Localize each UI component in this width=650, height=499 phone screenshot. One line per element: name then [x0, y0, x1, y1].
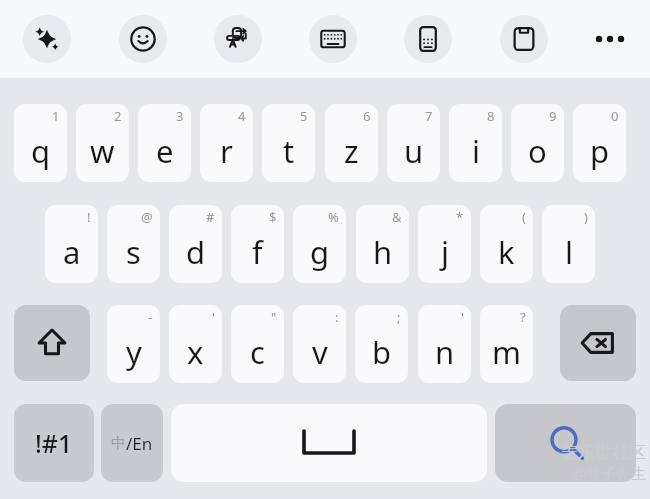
staticText: a	[63, 231, 81, 273]
staticText: i	[472, 130, 480, 172]
staticText: !#1	[35, 426, 73, 460]
staticText: g	[310, 231, 330, 273]
staticText: 中	[111, 434, 126, 453]
staticText: 3	[176, 107, 184, 125]
staticText: n	[435, 331, 455, 373]
staticText: d	[186, 231, 206, 273]
button[interactable]: Translate	[214, 15, 262, 63]
staticText: c	[250, 331, 265, 373]
button[interactable]: !	[45, 205, 98, 283]
button[interactable]: Emoji	[119, 15, 167, 63]
button[interactable]: 1	[14, 104, 67, 182]
staticText: )	[584, 208, 588, 226]
button[interactable]: One hand mode	[404, 15, 452, 63]
staticText: 9	[549, 107, 557, 125]
button[interactable]: 3	[138, 104, 191, 182]
button[interactable]: 中	[101, 404, 163, 482]
button[interactable]: %	[293, 205, 346, 283]
button[interactable]: 0	[573, 104, 626, 182]
staticText: z	[344, 130, 359, 172]
staticText: *	[456, 208, 464, 226]
staticText: @号子先生	[572, 463, 646, 483]
staticText: 7	[425, 107, 433, 125]
button[interactable]: 4	[200, 104, 253, 182]
staticText: $	[269, 208, 277, 226]
staticText: &	[392, 208, 402, 226]
staticText: k	[498, 231, 515, 273]
staticText: b	[372, 331, 392, 373]
button[interactable]: @	[107, 205, 160, 283]
staticText: j	[441, 231, 449, 273]
button[interactable]: More options	[588, 27, 632, 51]
button[interactable]: 6	[325, 104, 378, 182]
staticText: t	[283, 130, 295, 172]
button[interactable]: Search	[495, 404, 636, 482]
button[interactable]: "	[231, 305, 284, 383]
button[interactable]: (	[480, 205, 533, 283]
button[interactable]: Shift	[14, 305, 90, 381]
button[interactable]: '	[169, 305, 222, 383]
button[interactable]: 9	[511, 104, 564, 182]
staticText: %	[328, 208, 339, 226]
staticText: x	[187, 331, 204, 373]
button[interactable]: 7	[387, 104, 440, 182]
button[interactable]: !#1	[14, 404, 94, 482]
staticText: "	[271, 308, 277, 326]
button[interactable]: 2	[76, 104, 129, 182]
staticText: o	[528, 130, 547, 172]
staticText: l	[565, 231, 573, 273]
button[interactable]: 8	[449, 104, 502, 182]
staticText: m	[492, 331, 521, 373]
button[interactable]: Space	[171, 404, 487, 482]
staticText: h	[373, 231, 393, 273]
staticText: f	[252, 231, 263, 273]
staticText: s	[126, 231, 141, 273]
button[interactable]: ;	[355, 305, 408, 383]
staticText: ;	[397, 308, 401, 326]
staticText: '	[461, 308, 464, 326]
staticText: r	[220, 130, 233, 172]
button[interactable]: &	[356, 205, 409, 283]
staticText: q	[31, 130, 51, 172]
button[interactable]: #	[169, 205, 222, 283]
button[interactable]: ?	[480, 305, 533, 383]
staticText: /En	[126, 432, 153, 455]
button[interactable]: Sparkle	[23, 15, 71, 63]
staticText: 5	[300, 107, 308, 125]
staticText: u	[404, 130, 424, 172]
staticText: -	[148, 308, 153, 326]
staticText: 2	[114, 107, 122, 125]
button[interactable]: -	[107, 305, 160, 383]
staticText: 0	[611, 107, 619, 125]
staticText: p	[590, 130, 610, 172]
staticText: :	[335, 308, 339, 326]
staticText: ?	[520, 308, 526, 326]
button[interactable]: $	[231, 205, 284, 283]
staticText: y	[126, 331, 142, 373]
staticText: 8	[487, 107, 495, 125]
staticText: 4	[238, 107, 246, 125]
button[interactable]: '	[418, 305, 471, 383]
staticText: e	[156, 130, 174, 172]
button[interactable]: Backspace	[560, 305, 636, 381]
staticText: w	[90, 130, 115, 172]
staticText: 1	[52, 107, 60, 125]
button[interactable]: 5	[262, 104, 315, 182]
staticText: 6	[363, 107, 371, 125]
staticText: '	[212, 308, 215, 326]
button[interactable]: Clipboard	[500, 15, 548, 63]
button[interactable]: )	[542, 205, 595, 283]
button[interactable]: :	[293, 305, 346, 383]
staticText: v	[312, 331, 328, 373]
button[interactable]: Keyboard layout	[309, 15, 357, 63]
staticText: #	[206, 208, 215, 226]
staticText: 盖乐世社区	[561, 442, 646, 463]
staticText: (	[522, 208, 526, 226]
staticText: @	[141, 208, 153, 226]
staticText: !	[87, 208, 91, 226]
button[interactable]: *	[418, 205, 471, 283]
